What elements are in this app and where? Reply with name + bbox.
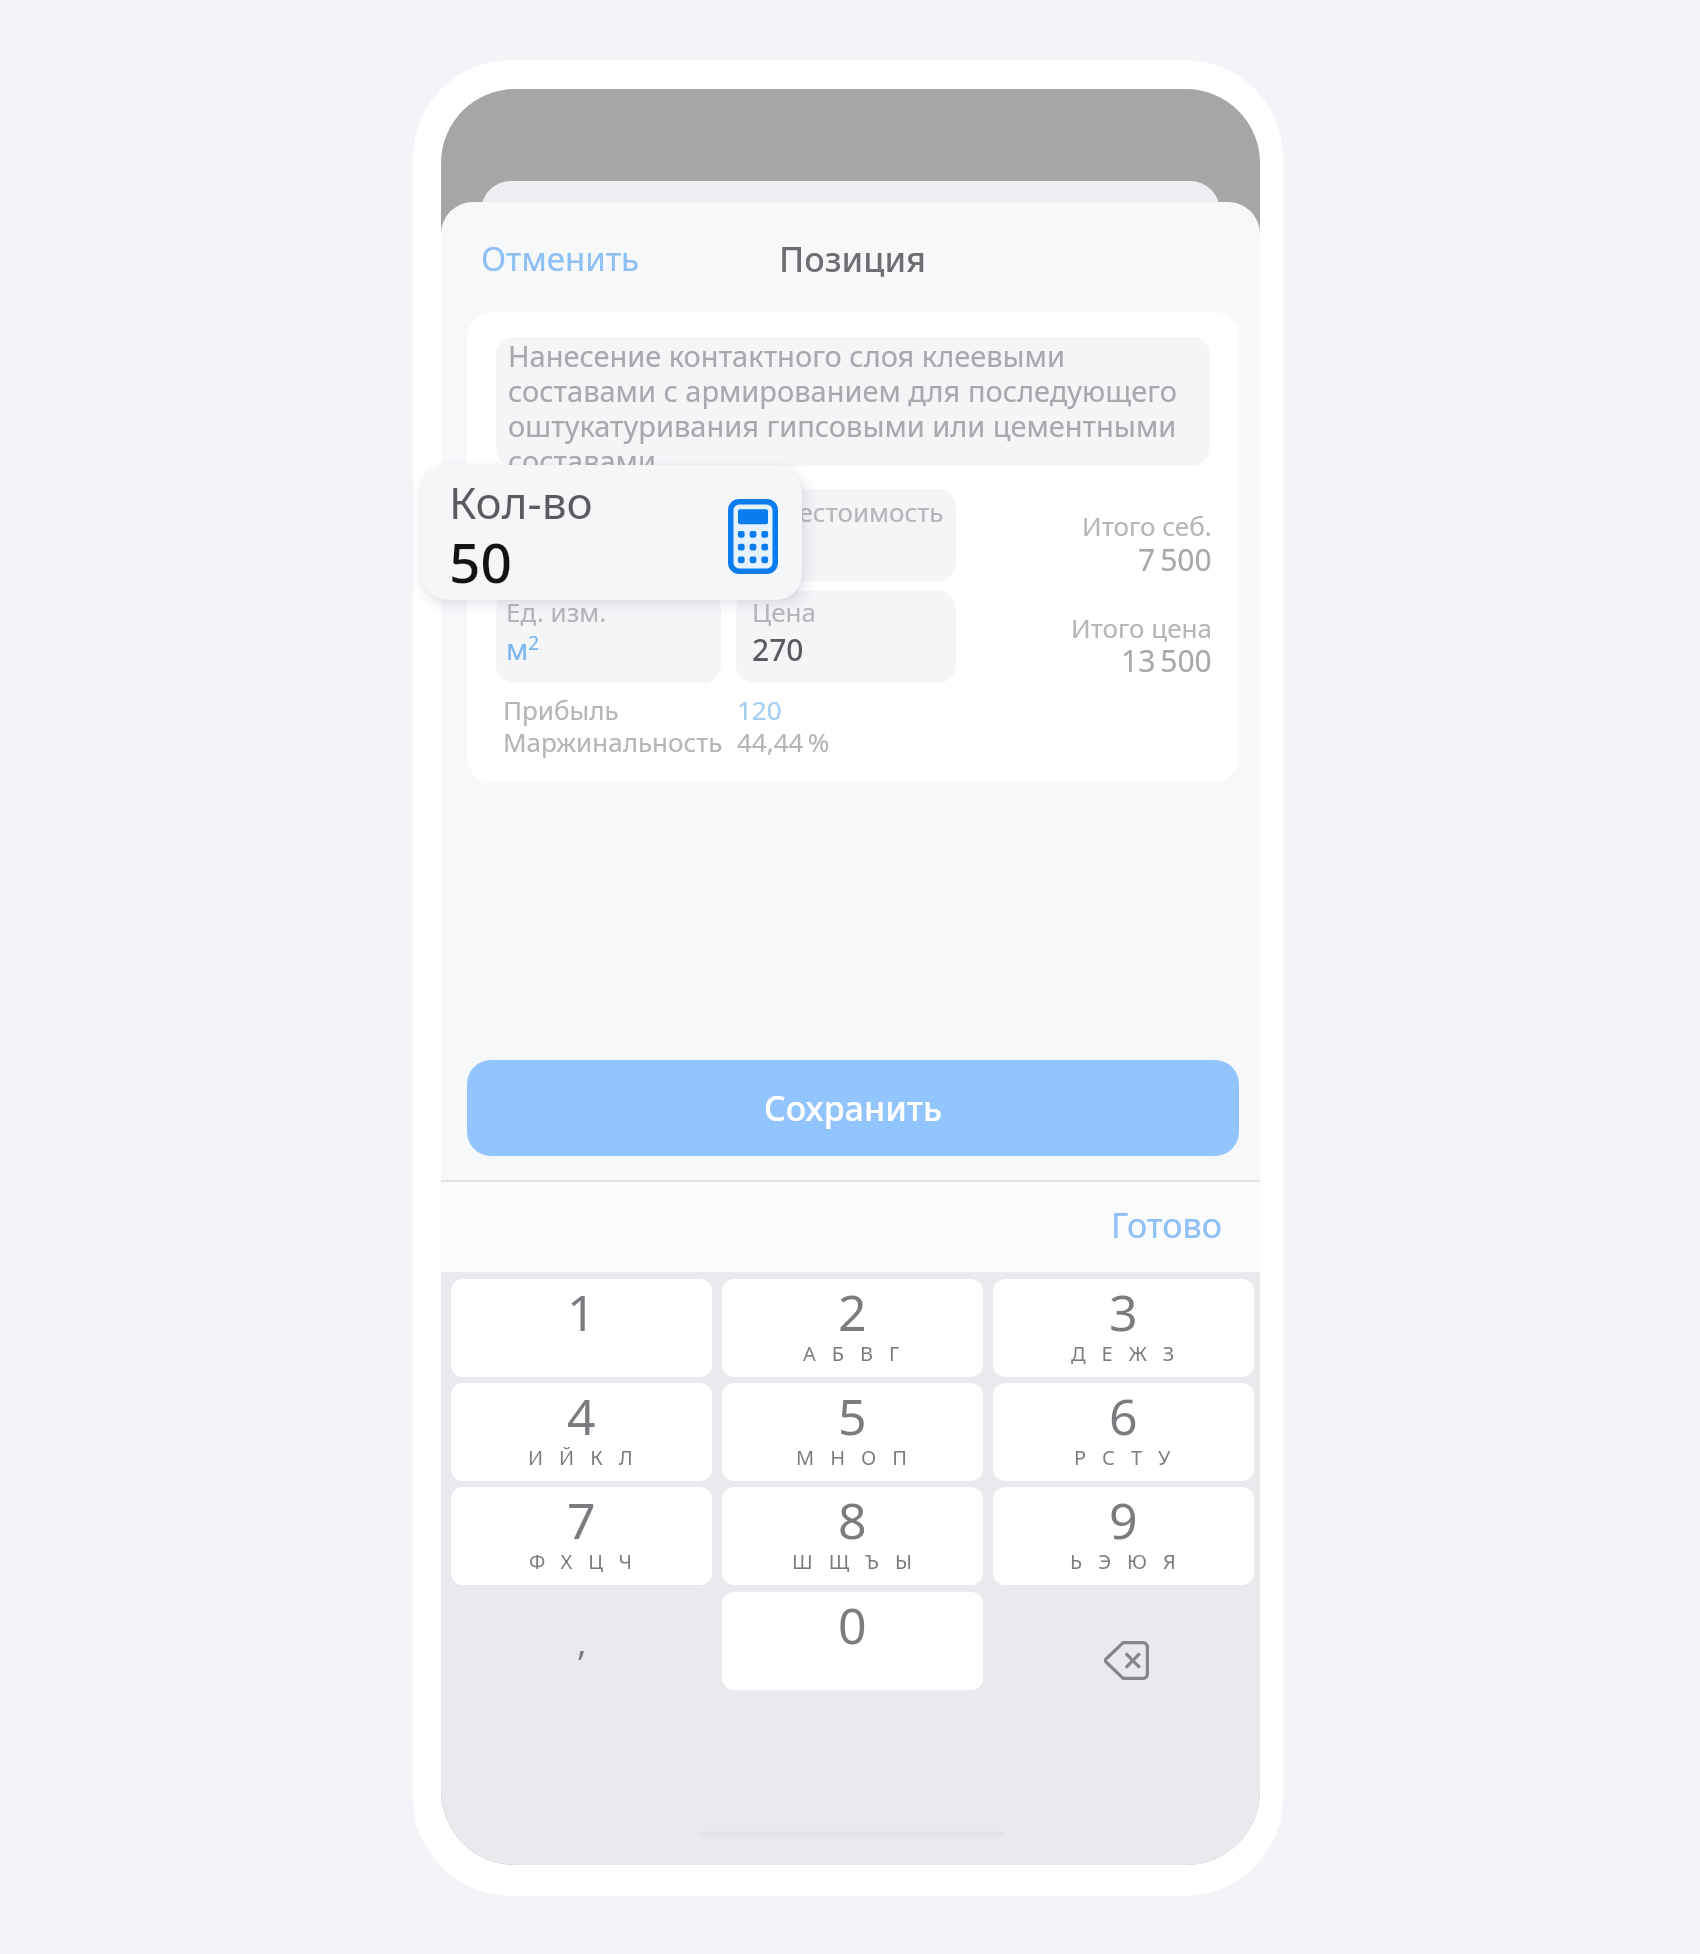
staticText: Отменить bbox=[481, 236, 640, 281]
staticText: ШЩЪЫ bbox=[792, 1548, 928, 1575]
staticText: ДЕЖЗ bbox=[1071, 1340, 1191, 1367]
staticText: 2 bbox=[838, 1279, 867, 1346]
staticText: 4 bbox=[567, 1383, 596, 1450]
staticText: , bbox=[577, 1617, 587, 1666]
staticText: 9 bbox=[1109, 1487, 1138, 1554]
button[interactable]: 2 bbox=[722, 1279, 983, 1377]
button[interactable]: Кол-во bbox=[421, 465, 802, 600]
button[interactable]: Сохранить bbox=[467, 1060, 1239, 1156]
staticText: Итого цена bbox=[1071, 610, 1212, 645]
staticText: 8 bbox=[838, 1487, 867, 1554]
staticText: Себестоимость bbox=[752, 494, 944, 529]
button[interactable]: , bbox=[451, 1592, 712, 1690]
staticText: АБВГ bbox=[803, 1340, 916, 1367]
staticText: 120 bbox=[737, 692, 782, 727]
staticText: ФХЦЧ bbox=[529, 1548, 649, 1575]
staticText: 13 500 bbox=[1121, 640, 1212, 681]
staticText: Нанесение контактного слоя клеевыми сост… bbox=[508, 337, 1188, 465]
button[interactable]: 6 bbox=[993, 1383, 1254, 1481]
staticText: Маржинальность bbox=[503, 724, 723, 759]
staticText: Ед. изм. bbox=[506, 594, 607, 629]
staticText: 270 bbox=[752, 629, 804, 670]
staticText: Сохранить bbox=[764, 1085, 943, 1131]
staticText: 50 bbox=[449, 524, 512, 599]
button[interactable]: 4 bbox=[451, 1383, 712, 1481]
button[interactable]: Готово bbox=[1096, 1192, 1237, 1258]
staticText: 6 bbox=[1109, 1383, 1138, 1450]
staticText: м2 bbox=[506, 629, 540, 668]
button[interactable]: 0 bbox=[722, 1592, 983, 1690]
staticText: МНОП bbox=[796, 1444, 923, 1471]
staticText: ИЙКЛ bbox=[528, 1444, 649, 1471]
staticText: 0 bbox=[838, 1592, 867, 1659]
button[interactable]: 3 bbox=[993, 1279, 1254, 1377]
staticText: 5 bbox=[838, 1383, 867, 1450]
staticText: Готово bbox=[1111, 1202, 1222, 1248]
staticText: Кол-во bbox=[449, 472, 593, 532]
button[interactable]: 7 bbox=[451, 1487, 712, 1585]
staticText: РСТУ bbox=[1074, 1444, 1187, 1471]
staticText: 44,44 % bbox=[737, 724, 830, 759]
button[interactable]: Calculator bbox=[728, 499, 778, 574]
button[interactable]: Нанесение контактного слоя клеевыми сост… bbox=[496, 337, 1210, 466]
staticText: Прибыль bbox=[503, 692, 619, 727]
button[interactable]: Цена bbox=[736, 591, 956, 683]
staticText: ЬЭЮЯ bbox=[1070, 1548, 1192, 1575]
button[interactable]: 1 bbox=[451, 1279, 712, 1377]
button[interactable]: Отменить bbox=[467, 228, 654, 289]
staticText: Итого себ. bbox=[1082, 508, 1212, 543]
staticText: 3 bbox=[1109, 1279, 1138, 1346]
button[interactable]: 9 bbox=[993, 1487, 1254, 1585]
button[interactable]: Backspace bbox=[993, 1592, 1254, 1690]
staticText: Цена bbox=[752, 594, 816, 629]
staticText: 1 bbox=[567, 1279, 596, 1346]
staticText: Позиция bbox=[779, 236, 926, 282]
button[interactable]: Себестоимость bbox=[736, 489, 956, 581]
button[interactable]: Ед. изм. bbox=[496, 591, 721, 683]
button[interactable]: 5 bbox=[722, 1383, 983, 1481]
button[interactable]: 8 bbox=[722, 1487, 983, 1585]
staticText: 7 bbox=[567, 1487, 596, 1554]
staticText: 7 500 bbox=[1138, 539, 1212, 580]
